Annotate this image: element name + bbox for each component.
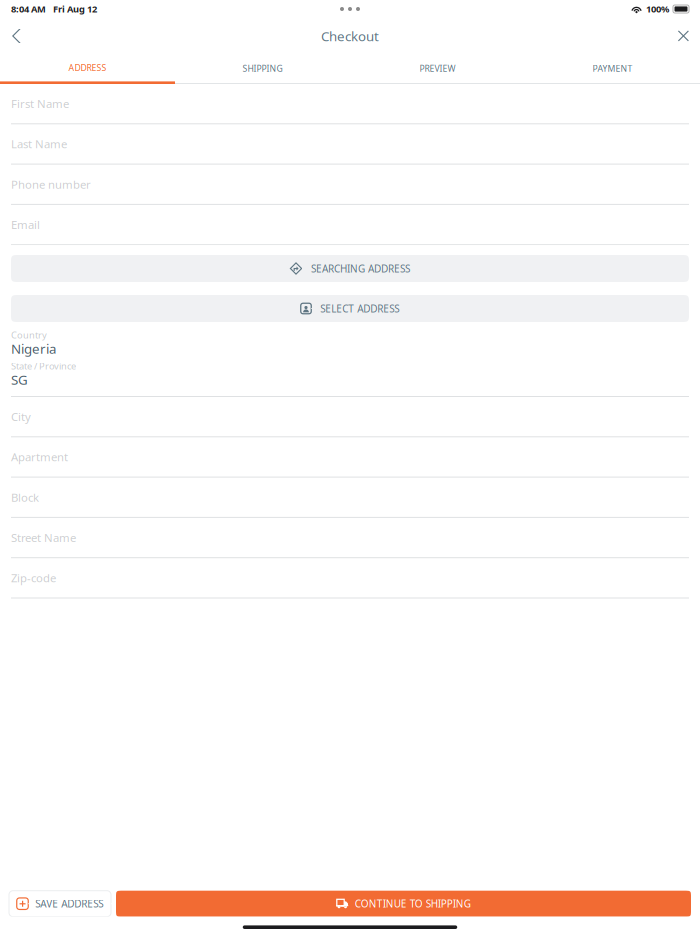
button[interactable]: Street Name — [11, 518, 689, 558]
button[interactable]: SEARCHING ADDRESS — [11, 255, 689, 282]
staticText: Country — [11, 329, 47, 341]
staticText: SHIPPING — [242, 63, 282, 74]
staticText: Nigeria — [11, 339, 56, 358]
staticText: Zip-code — [11, 570, 56, 585]
staticText: Street Name — [11, 530, 76, 545]
button[interactable]: Zip-code — [11, 558, 689, 598]
staticText: City — [11, 409, 31, 424]
button[interactable]: SHIPPING — [175, 54, 350, 84]
staticText: SG — [11, 370, 28, 389]
staticText: Email — [11, 217, 40, 232]
button[interactable]: Close — [672, 18, 695, 53]
staticText: Checkout — [321, 27, 379, 45]
staticText: 8:04 AM — [11, 3, 46, 15]
staticText: 100% — [646, 3, 669, 15]
staticText: First Name — [11, 96, 69, 111]
staticText: SEARCHING ADDRESS — [311, 262, 410, 275]
staticText: Fri Aug 12 — [53, 3, 97, 15]
button[interactable]: Last Name — [11, 124, 689, 165]
staticText: SELECT ADDRESS — [320, 302, 399, 315]
staticText: CONTINUE TO SHIPPING — [355, 897, 471, 910]
button[interactable]: SAVE ADDRESS — [9, 891, 111, 917]
button[interactable]: Apartment — [11, 437, 689, 478]
staticText: Block — [11, 489, 39, 505]
staticText: State / Province — [11, 360, 76, 372]
staticText: Last Name — [11, 136, 67, 152]
staticText: PAYMENT — [592, 63, 632, 74]
button[interactable]: Back — [5, 18, 28, 53]
button[interactable]: State / Province — [11, 361, 689, 392]
button[interactable]: ADDRESS — [0, 54, 175, 84]
button[interactable]: CONTINUE TO SHIPPING — [116, 891, 691, 917]
button[interactable]: First Name — [11, 84, 689, 124]
button[interactable]: PAYMENT — [525, 54, 700, 84]
button[interactable]: PREVIEW — [350, 54, 525, 84]
button[interactable]: City — [11, 397, 689, 437]
button[interactable]: Phone number — [11, 165, 689, 205]
button[interactable]: Email — [11, 205, 689, 245]
staticText: PREVIEW — [419, 63, 455, 74]
button[interactable]: Country — [11, 330, 689, 361]
staticText: Phone number — [11, 176, 91, 192]
staticText: SAVE ADDRESS — [35, 897, 103, 910]
button[interactable]: SELECT ADDRESS — [11, 295, 689, 322]
button[interactable]: Block — [11, 478, 689, 518]
staticText: Apartment — [11, 449, 68, 465]
staticText: ADDRESS — [68, 62, 106, 74]
